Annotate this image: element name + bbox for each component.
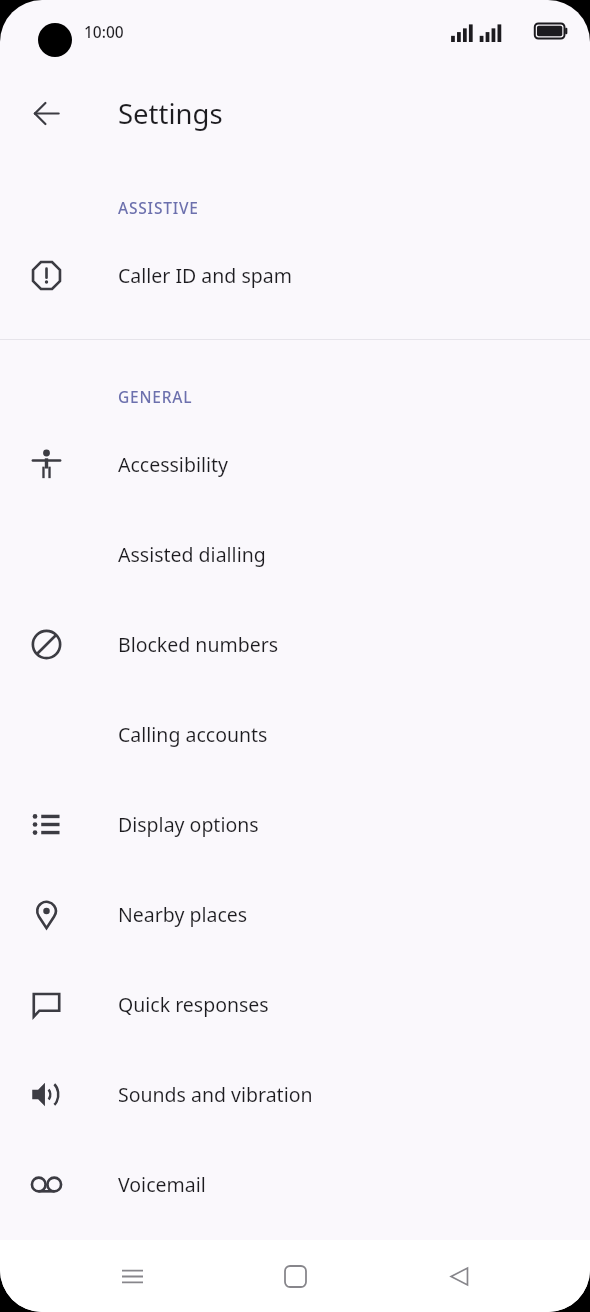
button[interactable]: Recents	[100, 1244, 164, 1308]
button[interactable]: Display options	[0, 779, 590, 869]
staticText: ADVANCED	[118, 1256, 210, 1278]
staticText: Nearby places	[118, 901, 248, 928]
staticText: Settings	[118, 95, 223, 132]
button[interactable]: Blocked numbers	[0, 599, 590, 689]
button[interactable]: Accessibility	[0, 419, 590, 509]
button[interactable]: Voicemail	[0, 1139, 590, 1229]
button[interactable]: Sounds and vibration	[0, 1049, 590, 1139]
button[interactable]: Quick responses	[0, 959, 590, 1049]
staticText: Quick responses	[118, 991, 269, 1018]
staticText: Voicemail	[118, 1171, 206, 1198]
staticText: Sounds and vibration	[118, 1081, 313, 1108]
button[interactable]: Caller ID and spam	[0, 230, 590, 320]
button[interactable]: Assisted dialling	[0, 509, 590, 599]
button[interactable]: Back	[22, 89, 70, 137]
staticText: Caller ID and spam	[118, 262, 292, 289]
staticText: GENERAL	[118, 386, 193, 407]
staticText: Blocked numbers	[118, 631, 279, 658]
staticText: Assisted dialling	[118, 541, 266, 568]
button[interactable]: Calling accounts	[0, 689, 590, 779]
staticText: 10:00	[84, 21, 124, 42]
button[interactable]: Back	[427, 1244, 491, 1308]
staticText: Accessibility	[118, 451, 228, 478]
staticText: ASSISTIVE	[118, 197, 199, 218]
button[interactable]: Nearby places	[0, 869, 590, 959]
staticText: Calling accounts	[118, 721, 268, 748]
button[interactable]: Home	[263, 1244, 327, 1308]
staticText: Display options	[118, 811, 259, 838]
